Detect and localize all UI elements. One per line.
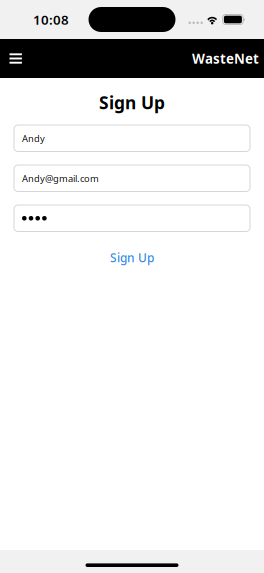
staticText: Andy@gmail.com [22,172,99,184]
staticText: Sign Up [110,249,154,265]
button[interactable]: Password [14,205,250,231]
button[interactable]: Sign Up [98,244,166,270]
button[interactable]: Menu [0,39,32,78]
button[interactable]: Email [14,165,250,191]
staticText: WasteNet [192,50,259,67]
button[interactable]: WasteNet [192,39,264,78]
staticText: Sign Up [99,91,165,114]
staticText: Andy [22,132,45,144]
staticText: 10:08 [33,11,69,28]
button[interactable]: Name [14,125,250,151]
